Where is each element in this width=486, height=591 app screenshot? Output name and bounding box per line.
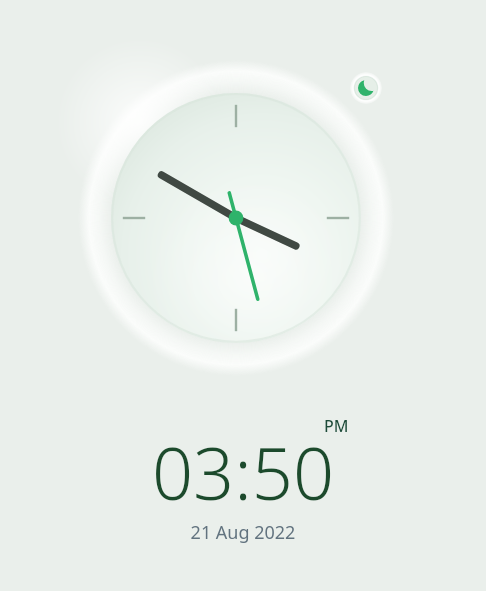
staticText: PM xyxy=(324,415,349,437)
staticText: 03:50 xyxy=(0,423,486,503)
staticText: 21 Aug 2022 xyxy=(0,520,486,546)
button[interactable]: Night mode xyxy=(350,72,382,104)
